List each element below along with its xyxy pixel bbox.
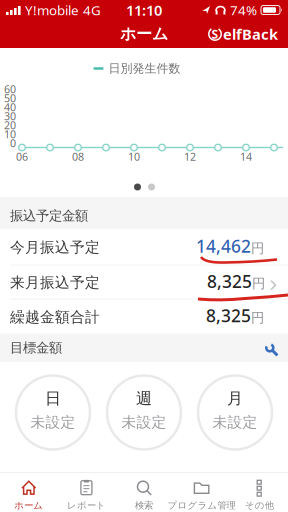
- staticText: 繰越金額合計: [10, 308, 100, 326]
- button[interactable]: レポート: [58, 473, 115, 512]
- staticText: 未設定: [121, 413, 166, 431]
- staticText: 11:10: [126, 0, 162, 20]
- staticText: 日: [45, 389, 61, 408]
- button[interactable]: 今月振込予定: [0, 229, 288, 265]
- button[interactable]: S: [208, 24, 278, 44]
- staticText: 8,325: [207, 270, 252, 293]
- staticText: 14,462: [196, 234, 251, 257]
- staticText: 未設定: [30, 413, 75, 431]
- button[interactable]: 日: [16, 375, 90, 449]
- staticText: 12: [184, 149, 196, 164]
- staticText: 08: [72, 149, 84, 164]
- staticText: ホーム: [120, 24, 168, 44]
- staticText: Y!mobile: [25, 1, 79, 19]
- button[interactable]: プログラム管理: [173, 473, 230, 512]
- staticText: 14: [240, 149, 252, 164]
- staticText: レポート: [67, 500, 106, 511]
- staticText: 月: [227, 389, 243, 408]
- staticText: 40: [4, 100, 16, 114]
- staticText: プログラム管理: [168, 500, 236, 511]
- staticText: 週: [136, 389, 152, 408]
- staticText: elfBack: [223, 24, 278, 44]
- staticText: 30: [4, 109, 16, 123]
- staticText: 50: [4, 91, 16, 105]
- staticText: 06: [16, 149, 28, 164]
- staticText: 10: [4, 127, 16, 141]
- staticText: 円: [251, 240, 264, 256]
- button[interactable]: 検索: [115, 473, 173, 512]
- staticText: 10: [128, 149, 140, 164]
- staticText: 8,325: [206, 304, 251, 327]
- staticText: 20: [4, 118, 16, 132]
- staticText: 目標金額: [10, 340, 62, 356]
- staticText: 日別発生件数: [108, 61, 180, 76]
- button[interactable]: ホーム: [0, 473, 58, 512]
- staticText: S: [211, 26, 218, 42]
- staticText: 来月振込予定: [10, 274, 100, 292]
- staticText: 検索: [135, 500, 153, 511]
- staticText: 円: [251, 310, 264, 326]
- staticText: その他: [245, 500, 274, 511]
- staticText: 0: [10, 136, 16, 150]
- staticText: 今月振込予定: [10, 238, 100, 256]
- staticText: 振込予定金額: [10, 208, 88, 224]
- staticText: ホーム: [14, 500, 43, 511]
- staticText: 4G: [83, 1, 101, 19]
- button[interactable]: 月: [198, 375, 272, 449]
- staticText: 円: [252, 275, 265, 292]
- button[interactable]: その他: [230, 473, 288, 512]
- staticText: 60: [4, 82, 16, 96]
- button[interactable]: [264, 342, 280, 358]
- button[interactable]: 週: [107, 375, 181, 449]
- staticText: 74%: [230, 1, 257, 19]
- button[interactable]: 来月振込予定: [0, 265, 288, 299]
- staticText: 未設定: [212, 413, 257, 431]
